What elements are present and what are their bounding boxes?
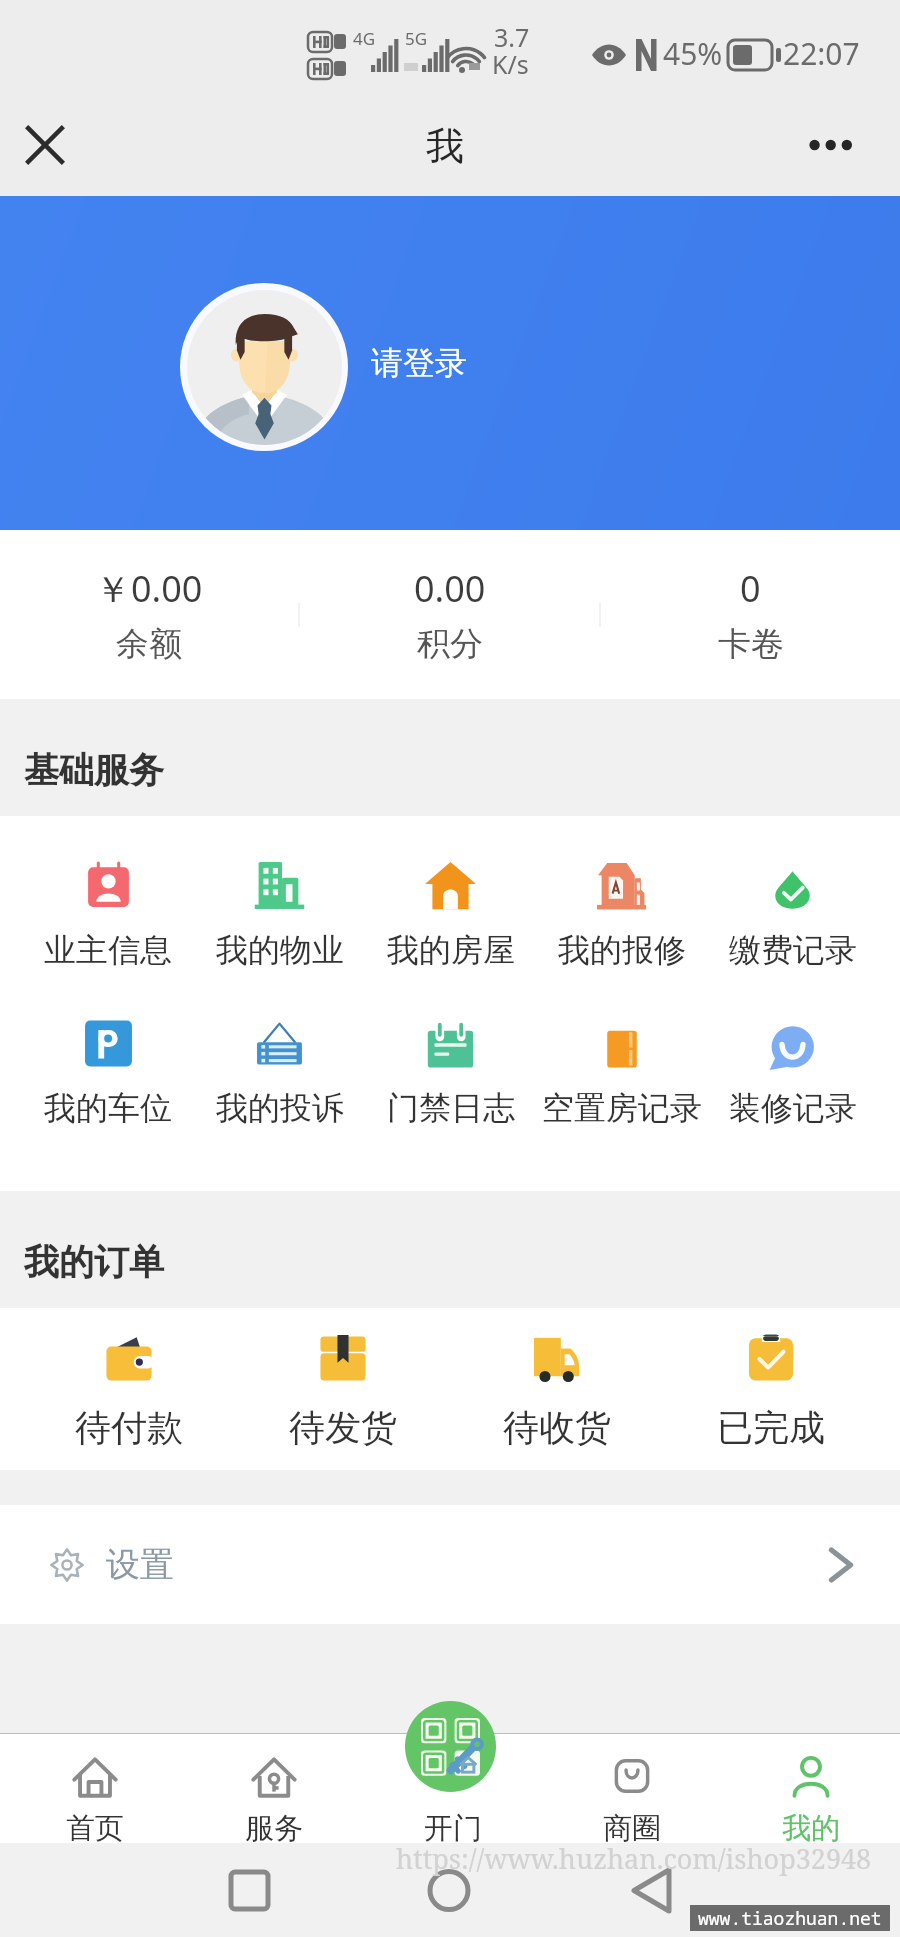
staticText: www.tiaozhuan.net	[698, 1906, 882, 1931]
button[interactable]: 待收货	[450, 1334, 664, 1450]
button[interactable]: 0	[601, 564, 900, 665]
staticText: 已完成	[717, 1405, 825, 1450]
staticText: 首页	[66, 1810, 124, 1843]
staticText: 22:07	[783, 33, 860, 74]
button[interactable]: 开门 Scan to open door	[405, 1701, 496, 1792]
staticText: 待付款	[75, 1405, 183, 1450]
staticText: 5G	[405, 27, 428, 50]
button[interactable]: Back	[628, 1868, 674, 1914]
staticText: 我的房屋	[387, 930, 515, 970]
staticText: ￥0.00	[95, 564, 203, 613]
button[interactable]: 设置	[0, 1505, 900, 1624]
staticText: 空置房记录	[542, 1088, 702, 1128]
staticText: K/s	[492, 47, 529, 81]
staticText: 我的物业	[216, 930, 344, 970]
staticText: 我的报修	[558, 930, 686, 970]
staticText: https://www.huzhan.com/ishop32948	[396, 1840, 872, 1877]
button[interactable]: 我的报修	[536, 860, 707, 970]
button[interactable]: 我的投诉	[194, 1018, 365, 1128]
button[interactable]: 商圈	[542, 1734, 721, 1843]
staticText: 服务	[245, 1810, 303, 1843]
staticText: 待发货	[289, 1405, 397, 1450]
staticText: 商圈	[603, 1810, 661, 1843]
button[interactable]: 0.00	[300, 564, 599, 665]
staticText: 4G	[353, 27, 376, 50]
button[interactable]: 待发货	[236, 1334, 450, 1450]
staticText: 0.00	[414, 564, 486, 613]
staticText: 业主信息	[44, 930, 172, 970]
button[interactable]: Close	[15, 115, 75, 175]
staticText: 卡卷	[718, 623, 784, 665]
button[interactable]: 空置房记录	[536, 1018, 707, 1128]
button[interactable]: 已完成	[664, 1334, 878, 1450]
staticText: 余额	[116, 623, 182, 665]
staticText: 0	[740, 564, 761, 613]
staticText: 我的订单	[24, 1240, 164, 1284]
button[interactable]: 门禁日志	[365, 1018, 536, 1128]
staticText: 我	[426, 122, 464, 170]
staticText: 45%	[663, 33, 723, 74]
button[interactable]: ￥0.00	[0, 564, 298, 665]
button[interactable]: 服务	[184, 1734, 363, 1843]
staticText: 我的投诉	[216, 1088, 344, 1128]
button[interactable]: Home	[426, 1868, 472, 1914]
button[interactable]: Recent apps	[226, 1868, 272, 1914]
staticText: 门禁日志	[387, 1088, 515, 1128]
staticText: 缴费记录	[729, 930, 857, 970]
button[interactable]: 我的	[721, 1734, 900, 1843]
staticText: 3.7	[494, 20, 530, 54]
button[interactable]: 我的房屋	[365, 860, 536, 970]
staticText: 我的	[782, 1810, 840, 1843]
button[interactable]: 待付款	[22, 1334, 236, 1450]
staticText: 请登录	[371, 343, 467, 383]
button[interactable]: More options	[809, 115, 871, 177]
button[interactable]: 开门	[363, 1734, 542, 1843]
staticText: 我的车位	[44, 1088, 172, 1128]
staticText: 设置	[106, 1543, 174, 1586]
staticText: 开门	[424, 1810, 482, 1843]
button[interactable]: 我的物业	[194, 860, 365, 970]
button[interactable]: 我的车位	[22, 1018, 194, 1128]
button[interactable]: 缴费记录	[707, 860, 878, 970]
button[interactable]: 业主信息	[22, 860, 194, 970]
staticText: 待收货	[503, 1405, 611, 1450]
button[interactable]: 装修记录	[707, 1018, 878, 1128]
button[interactable]: 首页	[5, 1734, 184, 1843]
staticText: 装修记录	[729, 1088, 857, 1128]
staticText: 积分	[417, 623, 483, 665]
staticText: 基础服务	[24, 748, 164, 792]
